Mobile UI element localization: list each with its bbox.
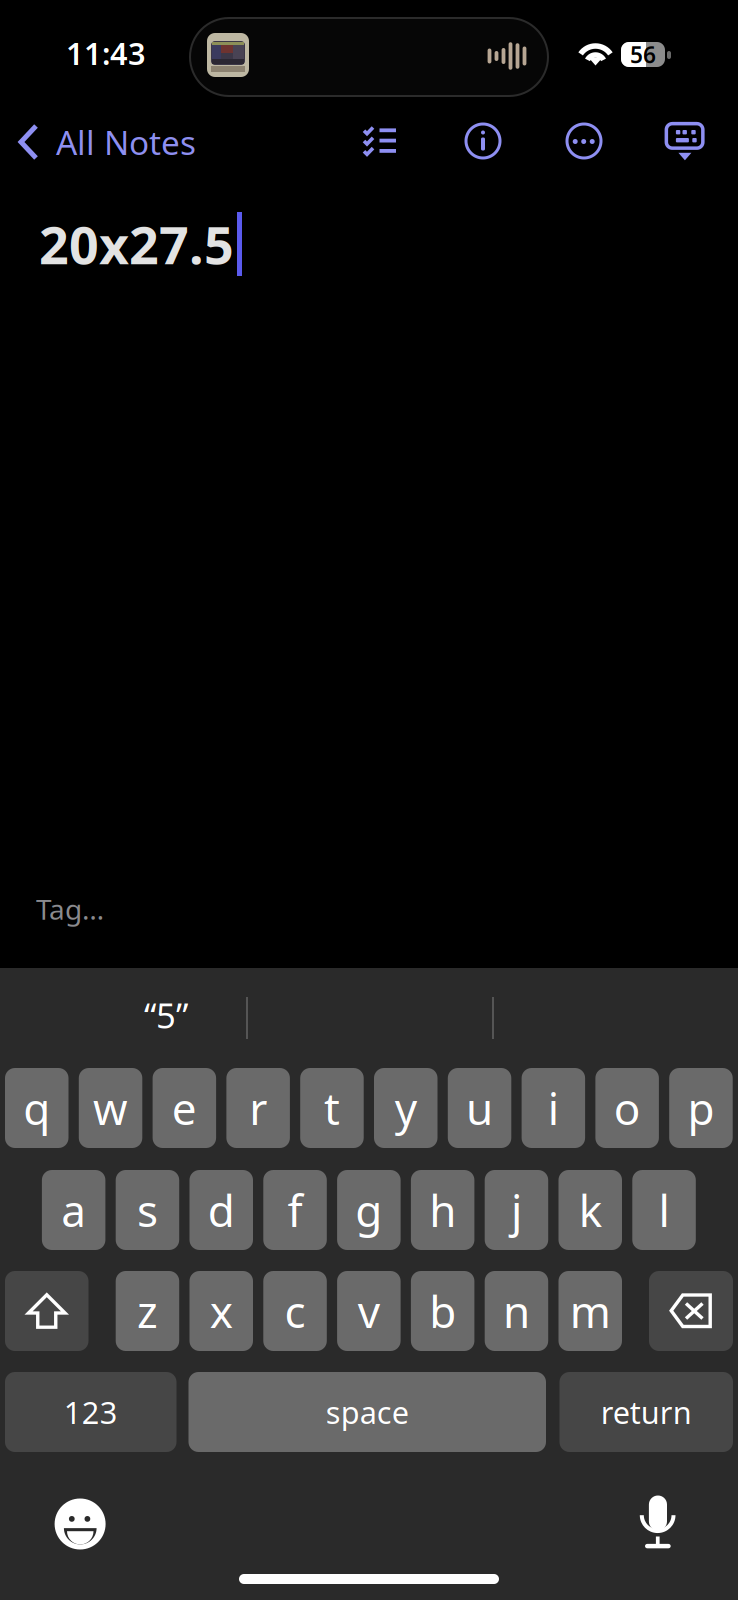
button[interactable]: n	[485, 1271, 548, 1351]
staticText: h	[429, 1181, 456, 1239]
button[interactable]: return	[559, 1372, 733, 1452]
staticText: 20x27.5	[39, 209, 234, 279]
staticText: Tag…	[36, 890, 104, 928]
button[interactable]: s	[116, 1170, 179, 1250]
button[interactable]: Dictate	[640, 1495, 676, 1549]
button[interactable]: Hide Keyboard	[661, 120, 709, 162]
button[interactable]: Info	[464, 122, 501, 159]
button[interactable]: k	[558, 1170, 622, 1250]
button[interactable]: t	[300, 1068, 364, 1148]
button[interactable]: r	[226, 1068, 290, 1148]
staticText: u	[466, 1079, 493, 1137]
staticText: i	[548, 1079, 559, 1137]
button[interactable]: 123	[5, 1372, 176, 1452]
button[interactable]: l	[632, 1170, 696, 1250]
staticText: b	[429, 1282, 456, 1340]
staticText: w	[93, 1079, 128, 1137]
staticText: s	[137, 1181, 158, 1239]
button[interactable]: p	[669, 1068, 733, 1148]
staticText: n	[503, 1282, 530, 1340]
button[interactable]: More	[565, 122, 602, 159]
button[interactable]: f	[263, 1170, 327, 1250]
button[interactable]: m	[558, 1271, 622, 1351]
button[interactable]: v	[337, 1271, 401, 1351]
staticText: z	[137, 1282, 158, 1340]
staticText: 11:43	[66, 33, 146, 73]
button[interactable]: All Notes	[16, 116, 276, 168]
staticText: c	[284, 1282, 305, 1340]
staticText: r	[249, 1079, 267, 1137]
button[interactable]: a	[42, 1170, 105, 1250]
button[interactable]: c	[263, 1271, 327, 1351]
button[interactable]: d	[189, 1170, 253, 1250]
button[interactable]: j	[485, 1170, 548, 1250]
staticText: m	[570, 1282, 611, 1340]
staticText: k	[579, 1181, 602, 1239]
staticText: return	[601, 1392, 692, 1432]
button[interactable]: “5”	[96, 992, 236, 1038]
staticText: a	[61, 1181, 86, 1239]
staticText: o	[614, 1079, 641, 1137]
button[interactable]: Checklist	[362, 125, 398, 154]
button[interactable]: i	[522, 1068, 585, 1148]
button[interactable]: y	[374, 1068, 437, 1148]
staticText: All Notes	[56, 120, 196, 164]
staticText: p	[687, 1079, 714, 1137]
button[interactable]: z	[116, 1271, 179, 1351]
button[interactable]: b	[411, 1271, 474, 1351]
staticText: q	[23, 1079, 50, 1137]
staticText: l	[658, 1181, 669, 1239]
button[interactable]: Shift	[5, 1271, 88, 1351]
staticText: e	[172, 1079, 197, 1137]
button[interactable]: w	[79, 1068, 142, 1148]
staticText: t	[324, 1079, 340, 1137]
button[interactable]: Delete	[649, 1271, 733, 1351]
button[interactable]: e	[153, 1068, 216, 1148]
staticText: space	[326, 1392, 409, 1432]
staticText: v	[358, 1282, 380, 1340]
button[interactable]: space	[188, 1372, 546, 1452]
button[interactable]: o	[595, 1068, 659, 1148]
staticText: “5”	[144, 992, 188, 1038]
staticText: g	[355, 1181, 382, 1239]
staticText: x	[210, 1282, 233, 1340]
button[interactable]: u	[448, 1068, 511, 1148]
staticText: f	[287, 1181, 302, 1239]
button[interactable]: Emoji	[55, 1498, 106, 1550]
staticText: y	[395, 1079, 417, 1137]
staticText: j	[511, 1181, 522, 1239]
button[interactable]: q	[5, 1068, 68, 1148]
button[interactable]: g	[337, 1170, 401, 1250]
staticText: d	[208, 1181, 235, 1239]
button[interactable]: x	[189, 1271, 253, 1351]
staticText: 56	[630, 39, 656, 69]
button[interactable]: h	[411, 1170, 474, 1250]
staticText: 123	[64, 1392, 118, 1432]
